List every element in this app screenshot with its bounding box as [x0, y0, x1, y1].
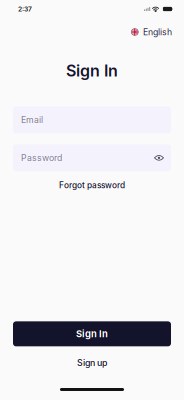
staticText: 2:37 — [18, 5, 32, 13]
button[interactable]: Sign up — [75, 355, 109, 370]
staticText: Sign up — [77, 357, 107, 368]
staticText: Email — [21, 115, 43, 125]
staticText: Password — [21, 153, 62, 163]
staticText: Sign In — [66, 61, 118, 80]
staticText: English — [143, 27, 172, 37]
button[interactable]: Forgot password — [57, 178, 127, 192]
staticText: Forgot password — [59, 180, 125, 190]
staticText: Sign In — [76, 328, 108, 339]
button[interactable]: English — [131, 27, 172, 37]
button[interactable]: Sign In — [13, 321, 171, 346]
